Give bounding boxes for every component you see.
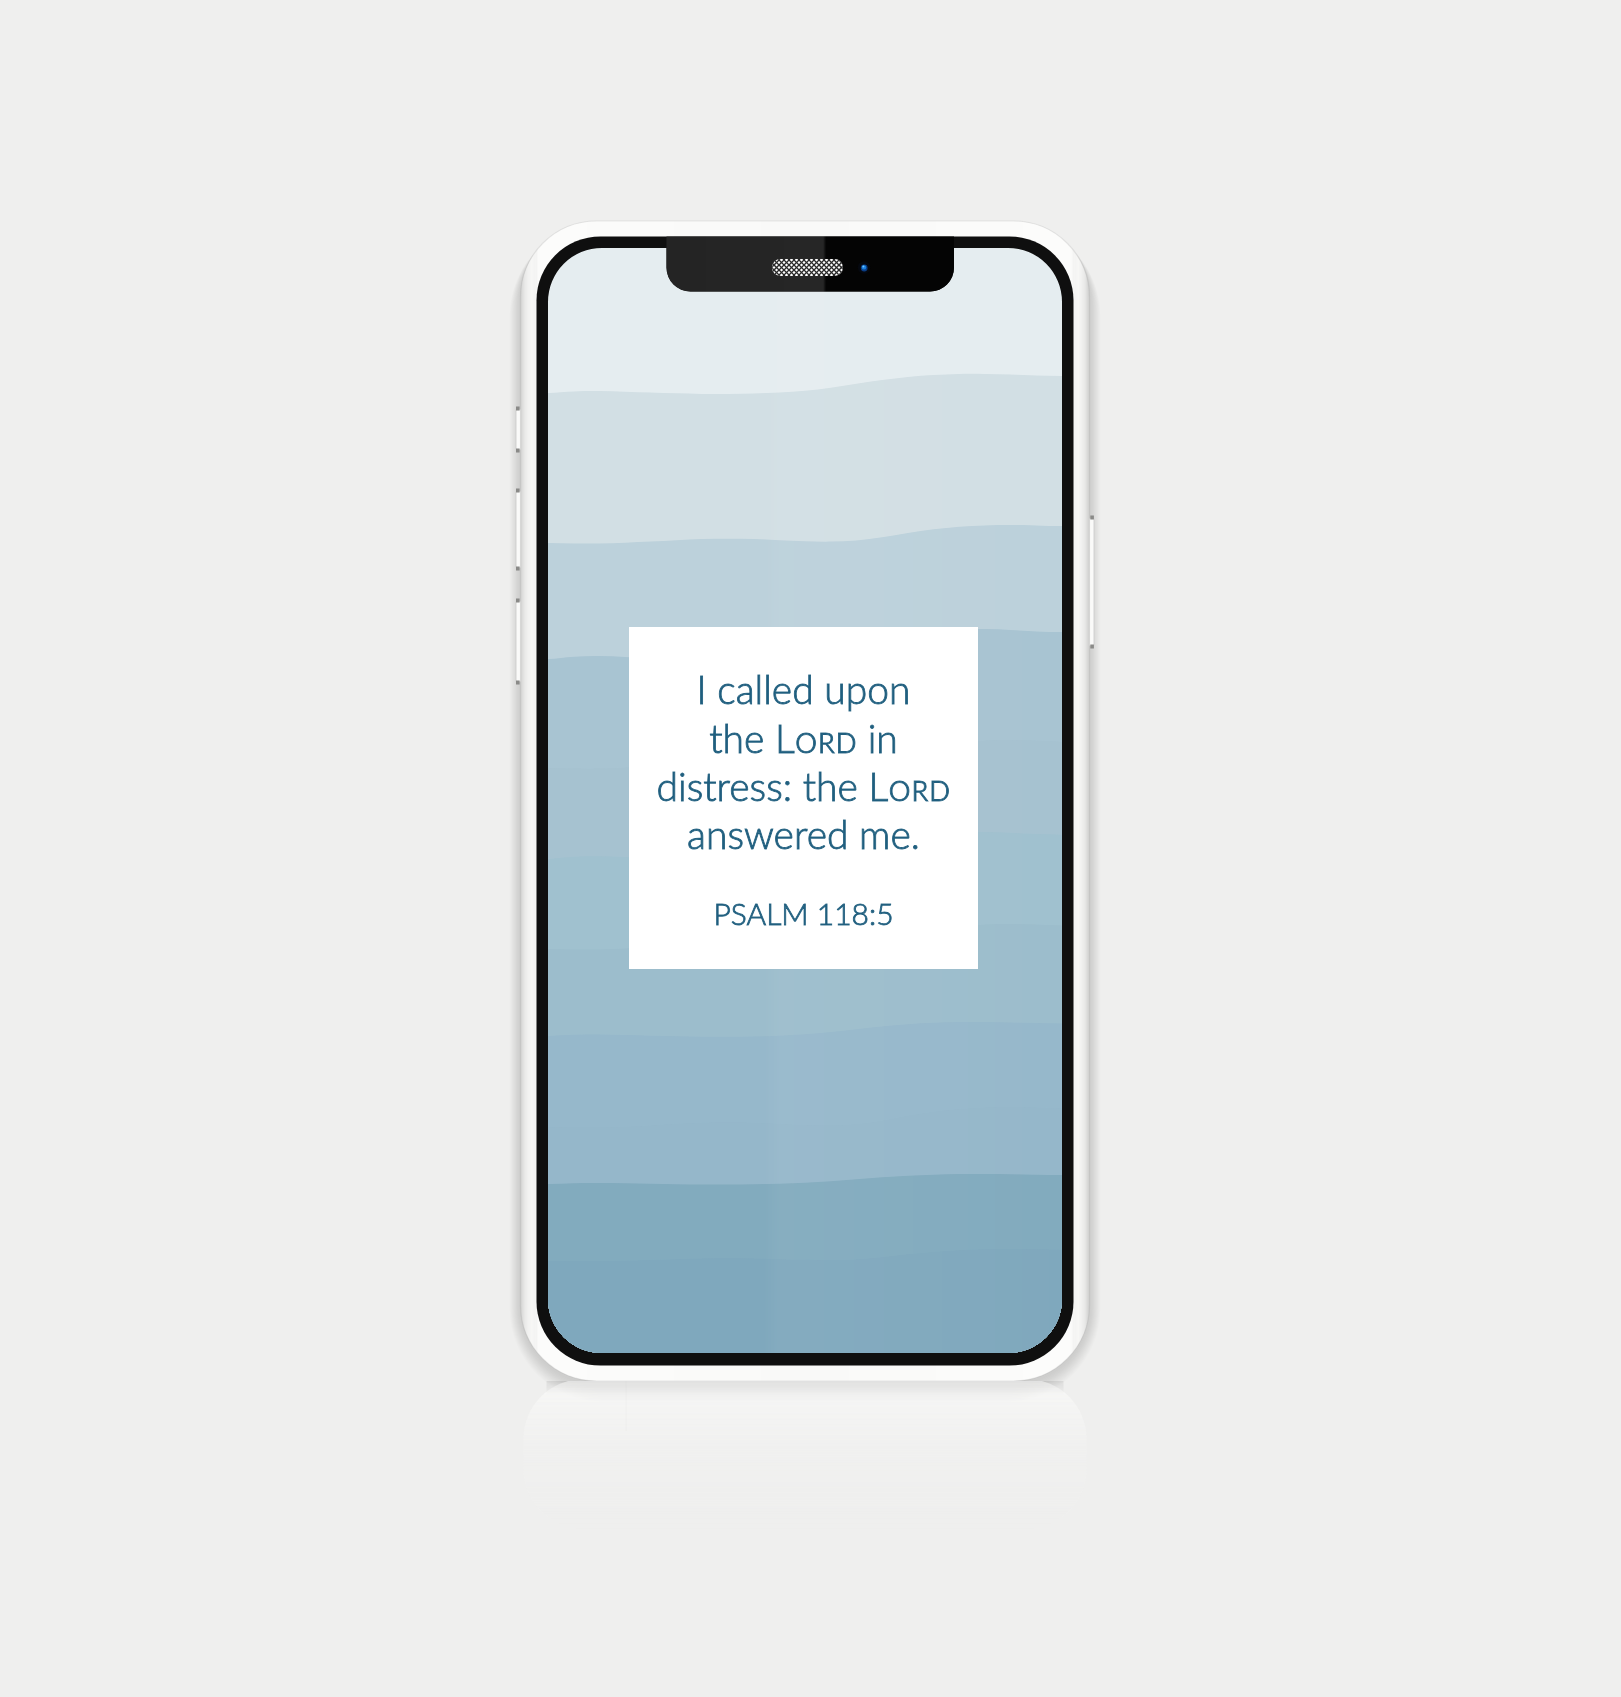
staticText: PSALM 118:5 — [629, 895, 978, 931]
staticText: answered me. — [629, 811, 978, 858]
staticText: distress: the Lᴏʀᴅ — [629, 763, 978, 810]
staticText: PSALM 118:5 — [629, 895, 978, 931]
button[interactable]: Daily verse card — [629, 627, 978, 969]
staticText: I called upon — [629, 666, 978, 713]
staticText: distress: the Lᴏʀᴅ — [629, 763, 978, 810]
staticText: I called upon — [629, 666, 978, 713]
staticText: the Lᴏʀᴅ in — [629, 715, 978, 762]
staticText: the Lᴏʀᴅ in — [629, 715, 978, 762]
staticText: answered me. — [629, 811, 978, 858]
